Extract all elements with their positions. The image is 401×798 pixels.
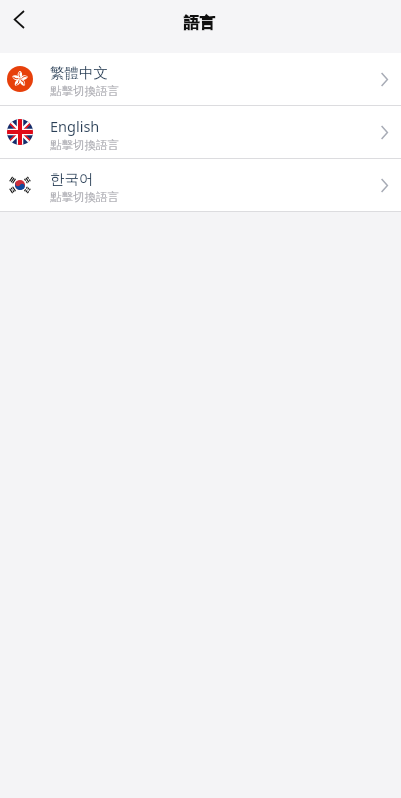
- staticText: 繁體中文: [50, 64, 108, 82]
- staticText: 點擊切換語言: [50, 84, 119, 98]
- button[interactable]: Back: [0, 0, 40, 41]
- staticText: 點擊切換語言: [50, 190, 119, 204]
- staticText: 點擊切換語言: [50, 138, 119, 152]
- staticText: 語言: [184, 13, 215, 33]
- button[interactable]: 한국어: [0, 159, 401, 211]
- button[interactable]: 繁體中文: [0, 53, 401, 105]
- button[interactable]: English: [0, 106, 401, 158]
- staticText: 한국어: [50, 170, 94, 188]
- staticText: English: [50, 116, 100, 136]
